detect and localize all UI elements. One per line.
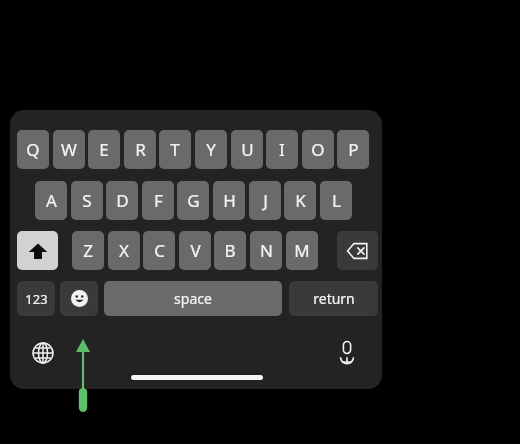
staticText: L — [332, 189, 341, 212]
button[interactable]: O — [302, 130, 334, 169]
staticText: O — [311, 138, 325, 161]
staticText: F — [154, 189, 163, 212]
staticText: return — [313, 289, 355, 308]
staticText: X — [119, 239, 129, 262]
staticText: H — [223, 189, 236, 212]
button[interactable]: K — [284, 181, 316, 220]
button[interactable]: W — [53, 130, 85, 169]
staticText: 123 — [25, 290, 48, 308]
staticText: T — [170, 138, 180, 161]
staticText: R — [135, 138, 146, 161]
staticText: Z — [83, 239, 93, 262]
button[interactable]: Z — [72, 231, 104, 270]
staticText: D — [116, 189, 129, 212]
button[interactable]: 123 — [17, 281, 55, 316]
staticText: A — [46, 189, 57, 212]
button[interactable]: Switch keyboard — [30, 340, 56, 366]
button[interactable]: N — [250, 231, 282, 270]
button[interactable]: P — [337, 130, 369, 169]
button[interactable]: H — [213, 181, 245, 220]
button[interactable]: X — [108, 231, 140, 270]
staticText: N — [260, 239, 273, 262]
staticText: Q — [26, 138, 40, 161]
button[interactable]: U — [231, 130, 263, 169]
button[interactable]: T — [159, 130, 191, 169]
staticText: P — [348, 138, 359, 161]
button[interactable]: S — [71, 181, 103, 220]
button[interactable]: V — [179, 231, 211, 270]
staticText: space — [174, 289, 212, 308]
button[interactable]: B — [214, 231, 246, 270]
staticText: K — [295, 189, 306, 212]
staticText: M — [294, 239, 310, 262]
button[interactable]: D — [106, 181, 138, 220]
staticText: Y — [206, 138, 216, 161]
button[interactable]: Shift — [17, 231, 58, 270]
button[interactable]: return — [289, 281, 378, 316]
button[interactable]: Emoji — [60, 281, 98, 316]
button[interactable]: F — [142, 181, 174, 220]
button[interactable]: Backspace — [337, 231, 378, 270]
button[interactable]: J — [249, 181, 281, 220]
button[interactable]: G — [177, 181, 209, 220]
button[interactable]: A — [35, 181, 67, 220]
staticText: C — [154, 239, 165, 262]
staticText: I — [279, 138, 285, 161]
staticText: J — [263, 189, 268, 212]
button[interactable]: C — [143, 231, 175, 270]
button[interactable]: E — [88, 130, 120, 169]
staticText: U — [241, 138, 254, 161]
button[interactable]: Q — [17, 130, 49, 169]
button[interactable]: R — [124, 130, 156, 169]
staticText: B — [224, 239, 236, 262]
staticText: S — [82, 189, 92, 212]
button[interactable]: M — [286, 231, 318, 270]
staticText: W — [61, 138, 77, 161]
staticText: G — [187, 189, 200, 212]
button[interactable]: Y — [195, 130, 227, 169]
staticText: E — [99, 138, 109, 161]
button[interactable]: Dictate — [334, 339, 360, 365]
button[interactable]: space — [104, 281, 282, 316]
button[interactable]: L — [320, 181, 352, 220]
button[interactable]: I — [266, 130, 298, 169]
staticText: V — [190, 239, 201, 262]
